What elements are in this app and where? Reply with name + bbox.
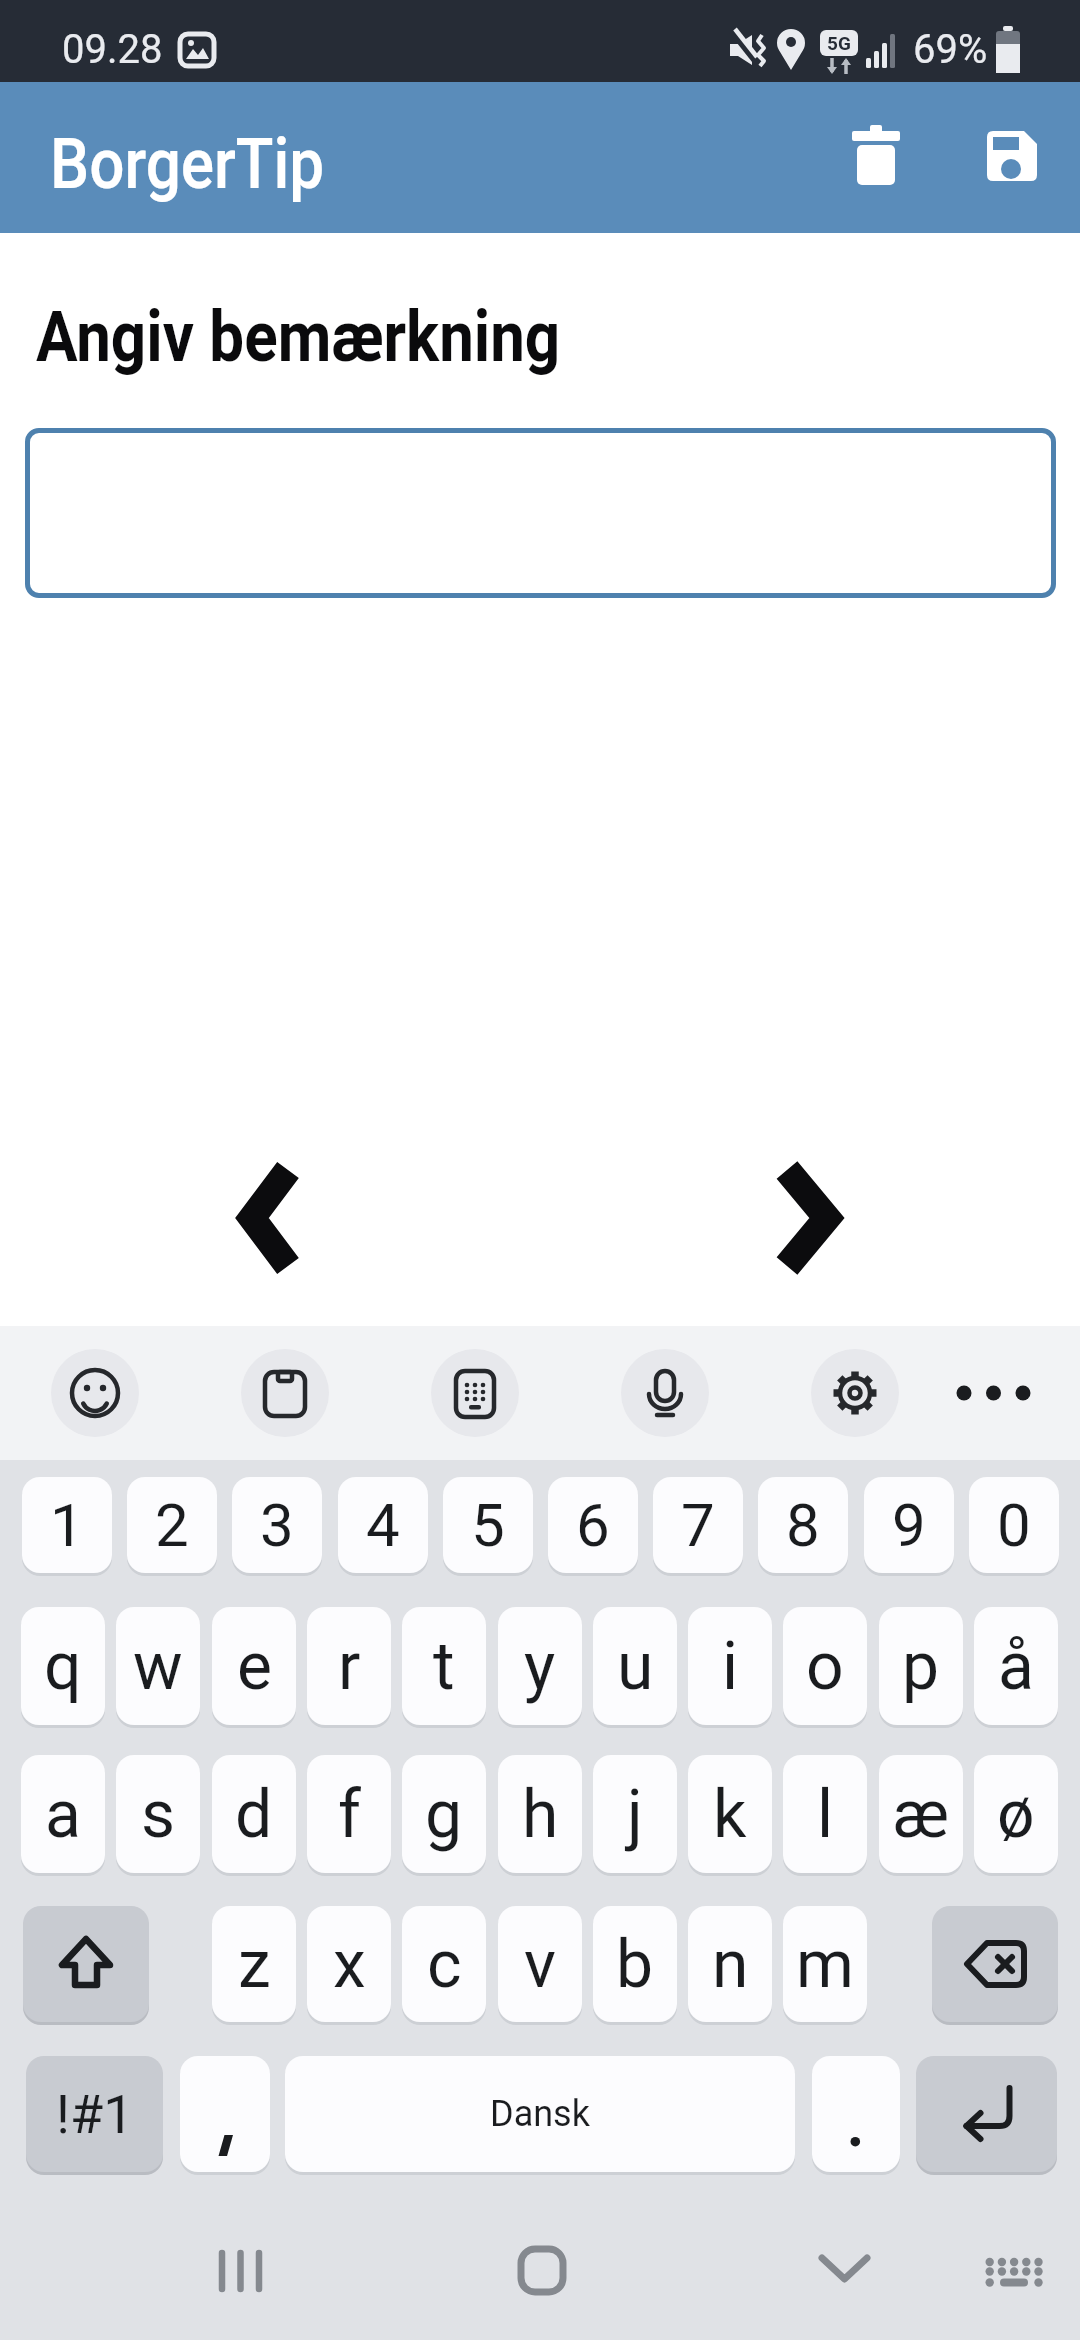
staticText: 9 <box>892 1490 926 1560</box>
button[interactable] <box>812 2056 900 2172</box>
button[interactable] <box>431 1349 519 1437</box>
button[interactable]: z <box>212 1906 296 2022</box>
button[interactable] <box>805 2242 875 2302</box>
staticText: k <box>713 1776 747 1853</box>
button[interactable]: e <box>212 1607 296 1725</box>
staticText: z <box>238 1926 271 2003</box>
button[interactable]: Dansk <box>285 2056 795 2172</box>
button[interactable]: v <box>498 1906 582 2022</box>
button[interactable]: ø <box>974 1755 1058 1873</box>
button[interactable]: 0 <box>969 1477 1059 1573</box>
button[interactable] <box>621 1349 709 1437</box>
staticText: f <box>338 1776 361 1853</box>
button[interactable] <box>950 1379 1040 1407</box>
button[interactable] <box>23 1906 149 2022</box>
button[interactable]: k <box>688 1755 772 1873</box>
staticText: m <box>796 1926 854 2003</box>
button[interactable]: j <box>593 1755 677 1873</box>
staticText: u <box>617 1628 654 1705</box>
staticText: d <box>235 1776 273 1853</box>
staticText: 0 <box>997 1490 1031 1560</box>
button[interactable]: o <box>783 1607 867 1725</box>
button[interactable]: b <box>593 1906 677 2022</box>
button[interactable]: p <box>879 1607 963 1725</box>
button[interactable] <box>241 1349 329 1437</box>
button[interactable]: 5 <box>443 1477 533 1573</box>
staticText: p <box>902 1628 940 1705</box>
button[interactable] <box>985 129 1039 183</box>
staticText: y <box>524 1628 556 1705</box>
button[interactable]: y <box>498 1607 582 1725</box>
button[interactable]: 9 <box>864 1477 954 1573</box>
staticText: 7 <box>681 1490 715 1560</box>
staticText: Angiv bemærkning <box>36 296 560 378</box>
staticText: x <box>333 1926 366 2003</box>
staticText: 6 <box>576 1490 610 1560</box>
staticText: w <box>133 1628 183 1705</box>
button[interactable] <box>190 2242 290 2302</box>
button[interactable]: h <box>498 1755 582 1873</box>
button[interactable]: 2 <box>127 1477 217 1573</box>
button[interactable] <box>916 2056 1057 2172</box>
button[interactable]: æ <box>879 1755 963 1873</box>
button[interactable]: s <box>116 1755 200 1873</box>
staticText: 69% <box>913 26 988 73</box>
staticText: s <box>141 1776 176 1853</box>
staticText: n <box>712 1926 749 2003</box>
button[interactable] <box>975 2242 1055 2302</box>
button[interactable]: !#1 <box>26 2056 163 2172</box>
button[interactable] <box>760 1155 850 1281</box>
button[interactable]: m <box>783 1906 867 2022</box>
staticText: BorgerTip <box>50 122 325 205</box>
staticText: Dansk <box>490 2093 590 2135</box>
button[interactable]: w <box>116 1607 200 1725</box>
button[interactable]: q <box>21 1607 105 1725</box>
staticText: j <box>627 1776 643 1853</box>
button[interactable] <box>850 121 902 191</box>
staticText: ø <box>997 1776 1035 1853</box>
button[interactable] <box>51 1349 139 1437</box>
staticText: æ <box>893 1776 949 1853</box>
staticText: 5G <box>827 32 851 54</box>
staticText: 2 <box>155 1490 189 1560</box>
staticText: 4 <box>366 1490 400 1560</box>
staticText: !#1 <box>56 2083 134 2146</box>
button[interactable]: l <box>783 1755 867 1873</box>
staticText: r <box>338 1628 361 1705</box>
staticText: h <box>522 1776 559 1853</box>
staticText: l <box>817 1776 834 1853</box>
button[interactable]: f <box>307 1755 391 1873</box>
button[interactable]: u <box>593 1607 677 1725</box>
button[interactable] <box>932 1906 1058 2022</box>
staticText: i <box>722 1628 739 1705</box>
button[interactable]: 4 <box>338 1477 428 1573</box>
button[interactable]: 3 <box>232 1477 322 1573</box>
button[interactable]: 1 <box>22 1477 112 1573</box>
button[interactable]: c <box>402 1906 486 2022</box>
staticText: e <box>237 1628 272 1705</box>
staticText: g <box>425 1776 463 1853</box>
button[interactable]: 8 <box>758 1477 848 1573</box>
button[interactable] <box>180 2056 270 2172</box>
staticText: v <box>524 1926 556 2003</box>
button[interactable]: t <box>402 1607 486 1725</box>
button[interactable]: i <box>688 1607 772 1725</box>
button[interactable]: n <box>688 1906 772 2022</box>
button[interactable]: å <box>974 1607 1058 1725</box>
staticText: b <box>616 1926 654 2003</box>
button[interactable]: d <box>212 1755 296 1873</box>
button[interactable]: 6 <box>548 1477 638 1573</box>
button[interactable] <box>25 428 1056 598</box>
button[interactable]: a <box>21 1755 105 1873</box>
button[interactable] <box>505 2242 575 2302</box>
staticText: 5 <box>471 1490 505 1560</box>
button[interactable]: r <box>307 1607 391 1725</box>
staticText: o <box>806 1628 844 1705</box>
button[interactable]: x <box>307 1906 391 2022</box>
button[interactable] <box>225 1155 315 1281</box>
staticText: t <box>433 1628 455 1705</box>
button[interactable] <box>811 1349 899 1437</box>
button[interactable]: g <box>402 1755 486 1873</box>
staticText: å <box>998 1628 1034 1705</box>
button[interactable]: 7 <box>653 1477 743 1573</box>
